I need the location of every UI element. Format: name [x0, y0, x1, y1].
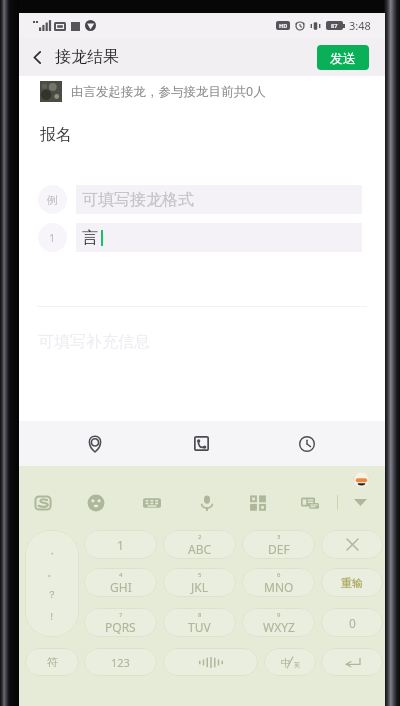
- staticText: WXYZ: [263, 619, 295, 635]
- button[interactable]: Contact: [183, 421, 219, 466]
- button[interactable]: Enter: [321, 648, 383, 676]
- staticText: GHI: [110, 579, 132, 595]
- button[interactable]: Hide keyboard: [342, 488, 378, 517]
- staticText: TUV: [188, 619, 211, 635]
- staticText: 1: [117, 537, 124, 553]
- button[interactable]: Card: [288, 488, 332, 517]
- button[interactable]: 1: [84, 530, 157, 559]
- staticText: ABC: [188, 541, 212, 557]
- staticText: 3:48: [349, 18, 371, 33]
- button[interactable]: 5 JKL: [163, 568, 236, 597]
- staticText: 5: [198, 571, 202, 579]
- staticText: 2: [198, 533, 202, 541]
- staticText: 8: [198, 611, 202, 619]
- staticText: 1: [49, 230, 56, 245]
- button[interactable]: 9 WXYZ: [242, 608, 315, 637]
- staticText: ！: [47, 610, 57, 623]
- staticText: 重输: [341, 576, 363, 590]
- staticText: 由言发起接龙，参与接龙目前共0人: [71, 83, 266, 100]
- staticText: ，: [47, 544, 57, 557]
- staticText: 发送: [330, 50, 356, 66]
- staticText: 符: [47, 655, 58, 669]
- staticText: 123: [111, 655, 130, 670]
- staticText: 英: [294, 661, 300, 669]
- button[interactable]: Scan QR: [236, 488, 280, 517]
- staticText: ？: [47, 588, 57, 601]
- button[interactable]: 重输: [321, 568, 383, 597]
- staticText: DEF: [268, 541, 290, 557]
- button[interactable]: 符: [25, 648, 79, 676]
- button[interactable]: 8 TUV: [163, 608, 236, 637]
- button[interactable]: Punctuation: [25, 530, 79, 637]
- staticText: 报名: [40, 125, 72, 145]
- staticText: 可填写补充信息: [38, 332, 150, 352]
- button[interactable]: 发送: [317, 45, 369, 70]
- staticText: 6: [277, 571, 281, 579]
- button[interactable]: 可填写接龙格式: [76, 185, 362, 214]
- staticText: 9: [277, 611, 281, 619]
- button[interactable]: Sogou input: [21, 488, 65, 517]
- button[interactable]: Back: [19, 38, 55, 76]
- staticText: JKL: [191, 579, 208, 595]
- staticText: HD: [279, 22, 288, 29]
- button[interactable]: 6 MNO: [242, 568, 315, 597]
- staticText: 87: [331, 22, 338, 29]
- staticText: 。: [47, 566, 57, 579]
- button[interactable]: 123: [84, 648, 157, 676]
- button[interactable]: 言: [76, 223, 362, 252]
- button[interactable]: Keyboard layout: [130, 488, 174, 517]
- staticText: 可填写接龙格式: [82, 190, 194, 210]
- button[interactable]: 0: [321, 608, 383, 637]
- staticText: PQRS: [105, 619, 136, 635]
- staticText: 言: [82, 228, 98, 248]
- button[interactable]: 2 ABC: [163, 530, 236, 559]
- staticText: 0: [349, 615, 356, 631]
- button[interactable]: Space: [163, 648, 258, 676]
- button[interactable]: Voice input: [185, 488, 229, 517]
- button[interactable]: Time: [289, 421, 325, 466]
- button[interactable]: 4 GHI: [84, 568, 157, 597]
- button[interactable]: Emoji: [74, 488, 118, 517]
- staticText: 中: [281, 656, 291, 669]
- staticText: 接龙结果: [55, 47, 119, 67]
- button[interactable]: 7 PQRS: [84, 608, 157, 637]
- button[interactable]: Location: [77, 421, 113, 466]
- staticText: 例: [47, 193, 58, 207]
- button[interactable]: Delete: [321, 530, 383, 559]
- staticText: MNO: [264, 579, 294, 595]
- staticText: 4: [119, 571, 123, 579]
- button[interactable]: 中英: [264, 648, 316, 676]
- button[interactable]: 3 DEF: [242, 530, 315, 559]
- staticText: 3: [277, 533, 281, 541]
- staticText: 7: [119, 611, 123, 619]
